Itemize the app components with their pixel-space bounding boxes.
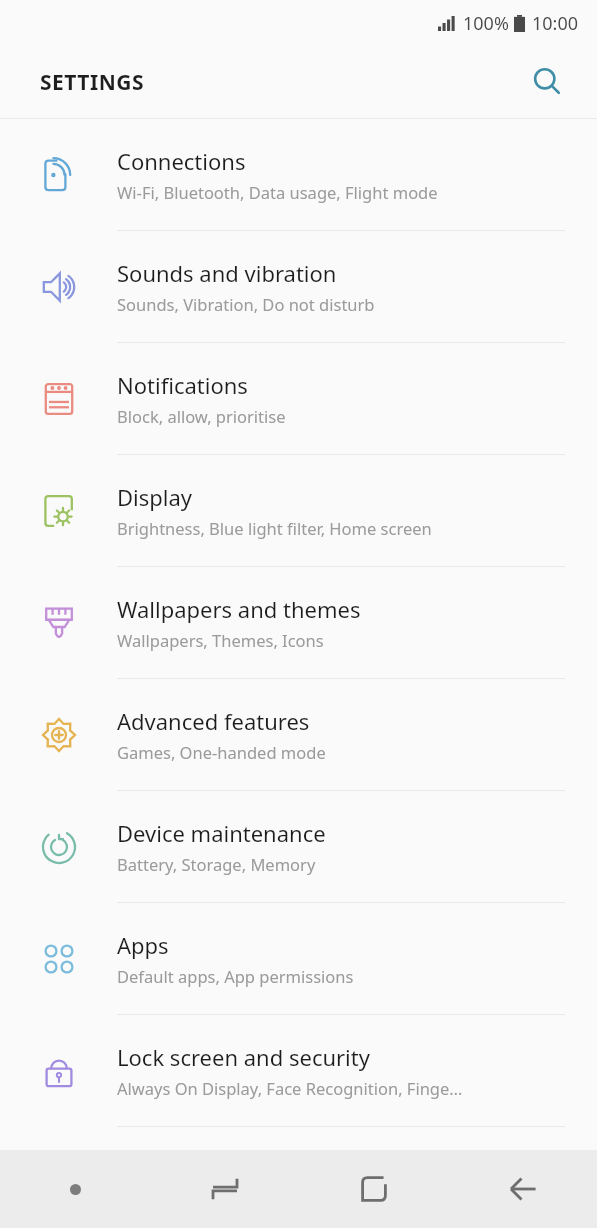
staticText: SETTINGS [40, 68, 145, 97]
staticText: Sounds, Vibration, Do not disturb [117, 293, 375, 315]
staticText: Device maintenance [117, 818, 326, 848]
button[interactable]: Notifications [0, 343, 597, 454]
staticText: Always On Display, Face Recognition, Fin… [117, 1077, 463, 1099]
staticText: Brightness, Blue light filter, Home scre… [117, 517, 432, 539]
button[interactable]: Recents [150, 1150, 299, 1228]
staticText: Connections [117, 146, 246, 176]
staticText: Display [117, 482, 193, 512]
staticText: 10:00 [532, 11, 579, 36]
staticText: Wi-Fi, Bluetooth, Data usage, Flight mod… [117, 181, 438, 203]
staticText: Games, One-handed mode [117, 741, 326, 763]
button[interactable]: Back [448, 1150, 597, 1228]
button[interactable]: Home [299, 1150, 448, 1228]
button[interactable]: Search [523, 58, 571, 106]
staticText: Advanced features [117, 706, 310, 736]
staticText: Lock screen and security [117, 1042, 370, 1072]
button[interactable]: Wallpapers and themes [0, 567, 597, 678]
button[interactable]: Lock screen and security [0, 1015, 597, 1126]
staticText: 100% [463, 11, 509, 36]
staticText: Wallpapers and themes [117, 594, 361, 624]
staticText: Sounds and vibration [117, 258, 337, 288]
staticText: Default apps, App permissions [117, 965, 354, 987]
button[interactable]: Sounds and vibration [0, 231, 597, 342]
staticText: Wallpapers, Themes, Icons [117, 629, 324, 651]
button[interactable]: Apps [0, 903, 597, 1014]
button[interactable]: Device maintenance [0, 791, 597, 902]
staticText: Block, allow, prioritise [117, 405, 286, 427]
button[interactable]: Display [0, 455, 597, 566]
staticText: Notifications [117, 370, 248, 400]
staticText: Battery, Storage, Memory [117, 853, 316, 875]
button[interactable]: Connections [0, 119, 597, 230]
button[interactable]: Advanced features [0, 679, 597, 790]
staticText: Apps [117, 930, 169, 960]
